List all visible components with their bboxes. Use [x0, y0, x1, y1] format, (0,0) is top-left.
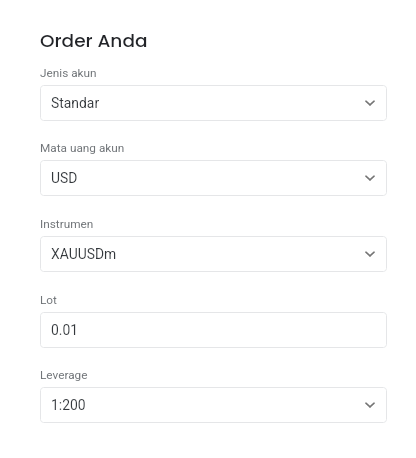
- button[interactable]: 1:200: [40, 387, 387, 423]
- staticText: Mata uang akun: [40, 141, 125, 155]
- staticText: Jenis akun: [40, 66, 97, 80]
- staticText: 1:200: [51, 397, 360, 413]
- other: Open Leverage picker: [360, 395, 380, 415]
- staticText: XAUUSDm: [51, 246, 360, 262]
- staticText: Leverage: [40, 368, 88, 382]
- other: Open Jenis akun picker: [360, 93, 380, 113]
- other: Open Mata uang akun picker: [360, 168, 380, 188]
- staticText: USD: [51, 170, 360, 186]
- button[interactable]: Standar: [40, 85, 387, 121]
- button[interactable]: USD: [40, 160, 387, 196]
- staticText: 0.01: [51, 322, 380, 338]
- button[interactable]: 0.01: [40, 312, 387, 348]
- staticText: Standar: [51, 95, 360, 111]
- other: Open Instrumen picker: [360, 244, 380, 264]
- staticText: Lot: [40, 293, 57, 307]
- staticText: Order Anda: [40, 28, 148, 54]
- staticText: Instrumen: [40, 217, 94, 231]
- button[interactable]: XAUUSDm: [40, 236, 387, 272]
